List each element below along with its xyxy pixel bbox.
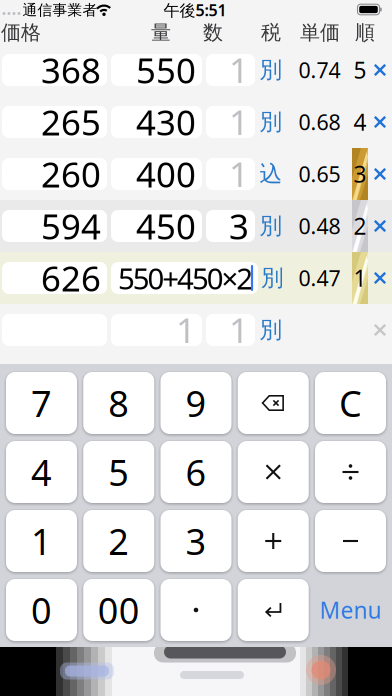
staticText: 550: [136, 47, 196, 93]
staticText: 5: [108, 448, 129, 496]
staticText: 550+450×2: [118, 258, 251, 297]
staticText: 0.68: [298, 108, 340, 136]
staticText: 0.48: [298, 212, 340, 240]
button[interactable]: 確定: [238, 579, 309, 641]
staticText: 8: [108, 379, 129, 427]
staticText: 3: [185, 517, 206, 565]
staticText: 5: [353, 55, 366, 85]
staticText: 4: [31, 448, 52, 496]
staticText: C: [339, 379, 362, 427]
staticText: 数: [203, 20, 223, 45]
button[interactable]: 別: [258, 252, 287, 304]
button[interactable]: Menu: [315, 579, 386, 641]
staticText: 430: [136, 99, 196, 145]
staticText: 260: [41, 151, 101, 197]
button[interactable]: 00: [83, 579, 154, 641]
staticText: 1: [353, 263, 366, 293]
button[interactable]: 価格: [2, 262, 107, 294]
staticText: 通信事業者: [22, 1, 97, 19]
staticText: 価格: [1, 20, 41, 45]
button[interactable]: 割る: [315, 441, 386, 503]
button[interactable]: 込: [255, 148, 287, 200]
button[interactable]: 数: [206, 158, 255, 190]
button[interactable]: 足す: [238, 510, 309, 572]
button[interactable]: 量: [111, 158, 202, 190]
staticText: 1: [176, 307, 196, 353]
button[interactable]: 小数点: [160, 579, 231, 641]
staticText: 込: [259, 160, 282, 188]
button[interactable]: 別: [255, 44, 287, 96]
button[interactable]: 削除: [238, 372, 309, 434]
staticText: 午後5:51: [163, 0, 226, 21]
button[interactable]: 5: [83, 441, 154, 503]
button[interactable]: 掛ける: [238, 441, 309, 503]
button[interactable]: 6: [160, 441, 231, 503]
button[interactable]: 数: [206, 106, 255, 138]
button[interactable]: 9: [160, 372, 231, 434]
staticText: Menu: [319, 595, 381, 625]
staticText: 順: [355, 20, 375, 45]
staticText: 0: [31, 586, 52, 634]
button[interactable]: 量: [111, 314, 202, 346]
button[interactable]: 別: [255, 200, 287, 252]
button[interactable]: 別: [255, 304, 287, 356]
button[interactable]: 価格: [2, 106, 107, 138]
button[interactable]: 4: [6, 441, 77, 503]
staticText: 368: [41, 47, 101, 93]
staticText: 1: [229, 99, 249, 145]
staticText: 3: [229, 203, 249, 249]
button[interactable]: 3: [160, 510, 231, 572]
button[interactable]: 数: [206, 210, 255, 242]
button[interactable]: 量: [111, 106, 202, 138]
staticText: 626: [41, 255, 101, 301]
staticText: 00: [98, 586, 140, 634]
button[interactable]: 量: [111, 262, 258, 294]
button[interactable]: 引く: [315, 510, 386, 572]
button[interactable]: 数: [206, 54, 255, 86]
button[interactable]: 価格: [2, 54, 107, 86]
button[interactable]: 価格: [2, 158, 107, 190]
button[interactable]: 0: [6, 579, 77, 641]
button[interactable]: 行を削除: [368, 252, 392, 304]
button[interactable]: 行を削除: [368, 96, 392, 148]
button[interactable]: 1: [6, 510, 77, 572]
staticText: 1: [229, 151, 249, 197]
staticText: 2: [108, 517, 129, 565]
button[interactable]: 行を削除: [368, 304, 392, 356]
button[interactable]: C: [315, 372, 386, 434]
staticText: 税: [261, 20, 281, 45]
staticText: 0.47: [298, 264, 340, 292]
staticText: 9: [185, 379, 206, 427]
button[interactable]: 行を削除: [368, 200, 392, 252]
staticText: 450: [136, 203, 196, 249]
button[interactable]: 2: [83, 510, 154, 572]
button[interactable]: 行を削除: [368, 148, 392, 200]
staticText: 量: [151, 20, 171, 45]
staticText: 1: [31, 517, 52, 565]
button[interactable]: 8: [83, 372, 154, 434]
button[interactable]: 行を削除: [368, 44, 392, 96]
staticText: 1: [229, 307, 249, 353]
button[interactable]: 価格: [2, 210, 107, 242]
staticText: 6: [185, 448, 206, 496]
staticText: 0.74: [298, 56, 340, 84]
staticText: 7: [31, 379, 52, 427]
staticText: 別: [259, 56, 282, 84]
staticText: 400: [136, 151, 196, 197]
staticText: 2: [353, 211, 366, 241]
staticText: 3: [353, 159, 366, 189]
staticText: 別: [259, 316, 282, 344]
staticText: 4: [353, 107, 366, 137]
staticText: 594: [41, 203, 101, 249]
button[interactable]: 7: [6, 372, 77, 434]
button[interactable]: 量: [111, 210, 202, 242]
button[interactable]: 数: [206, 314, 255, 346]
staticText: 0.65: [298, 160, 340, 188]
button[interactable]: 別: [255, 96, 287, 148]
staticText: 別: [259, 108, 282, 136]
staticText: 1: [229, 47, 249, 93]
button[interactable]: 量: [111, 54, 202, 86]
staticText: 265: [41, 99, 101, 145]
staticText: 別: [261, 264, 284, 292]
